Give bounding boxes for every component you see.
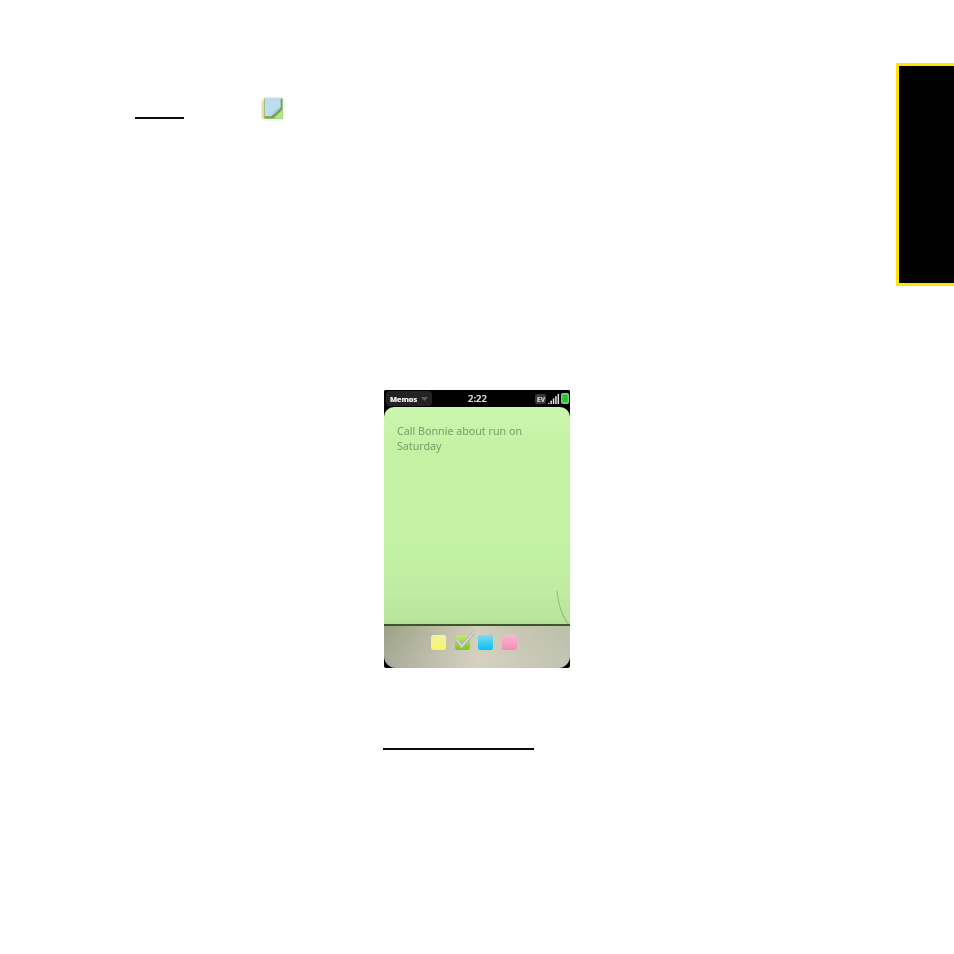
staticText: 2:22 (468, 392, 487, 405)
button[interactable]: Note colour (431, 635, 446, 650)
button[interactable]: Note colour (502, 635, 517, 650)
button[interactable]: EV data connection (535, 394, 546, 404)
staticText: Memos (390, 394, 418, 404)
other: Memos app icon (261, 97, 285, 121)
other: Battery (561, 393, 569, 404)
button[interactable]: Memos (386, 391, 432, 406)
button[interactable]: Call Bonnie about run on Saturday (397, 424, 538, 454)
button[interactable]: Note colour (455, 635, 470, 650)
staticText: EV (537, 395, 545, 404)
other: Signal strength (548, 393, 560, 404)
button[interactable]: Note colour (478, 635, 493, 650)
